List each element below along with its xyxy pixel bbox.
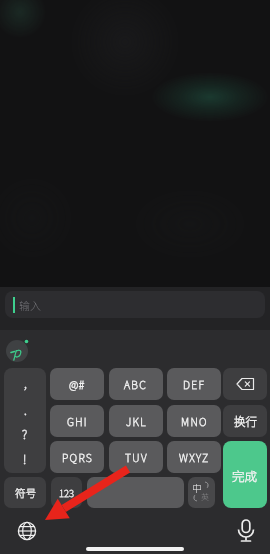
staticText: 英 (201, 491, 209, 503)
button[interactable]: GHI (50, 405, 104, 437)
button[interactable]: p (6, 340, 28, 362)
staticText: 换行 (234, 413, 257, 430)
button[interactable]: 输入 (5, 291, 265, 318)
staticText: , (24, 374, 27, 391)
button[interactable]: 123 (51, 477, 82, 508)
button[interactable] (14, 518, 40, 544)
staticText: 输入 (19, 297, 41, 313)
staticText: . (24, 401, 27, 418)
staticText: MNO (181, 414, 208, 429)
staticText: ABC (124, 377, 148, 392)
button[interactable]: 换行 (223, 405, 267, 437)
staticText: p (13, 342, 21, 361)
button[interactable]: ABC (109, 368, 163, 400)
button[interactable]: PQRS (50, 441, 104, 473)
button[interactable]: @# (50, 368, 104, 400)
button[interactable]: TUV (109, 441, 163, 473)
staticText: ! (23, 450, 27, 467)
button[interactable] (234, 518, 258, 546)
staticText: 符号 (15, 485, 36, 500)
button[interactable]: 符号 (4, 477, 46, 508)
button[interactable]: 中 (188, 477, 215, 508)
button[interactable]: MNO (167, 405, 221, 437)
button[interactable]: DEF (167, 368, 221, 400)
button[interactable] (87, 477, 184, 508)
staticText: 完成 (232, 466, 258, 484)
staticText: @# (69, 377, 85, 392)
staticText: WXYZ (179, 450, 210, 465)
staticText: PQRS (62, 450, 93, 465)
staticText: 123 (59, 486, 74, 500)
staticText: ? (22, 425, 28, 442)
button[interactable] (223, 368, 267, 400)
staticText: DEF (183, 377, 206, 392)
button[interactable]: JKL (109, 405, 163, 437)
staticText: JKL (126, 414, 147, 429)
button[interactable]: 完成 (223, 441, 267, 508)
staticText: TUV (125, 450, 148, 465)
button[interactable]: , (4, 368, 46, 473)
staticText: GHI (67, 414, 88, 429)
staticText: 中 (192, 480, 202, 494)
button[interactable]: WXYZ (167, 441, 221, 473)
